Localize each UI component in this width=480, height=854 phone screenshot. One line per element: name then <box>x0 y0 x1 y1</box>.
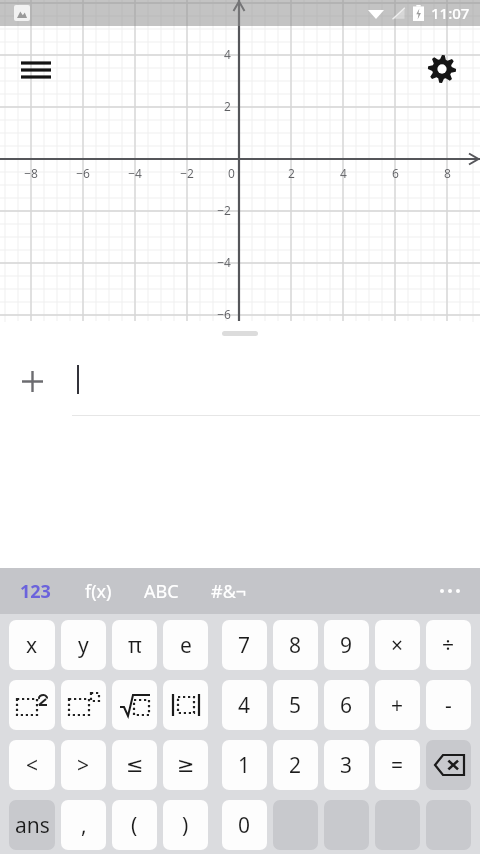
staticText: 11:07 <box>431 3 470 23</box>
button[interactable]: ≤ <box>112 740 157 790</box>
button[interactable]: y <box>61 620 106 670</box>
staticText: −2 <box>217 202 231 218</box>
button[interactable]: 123 <box>16 573 55 610</box>
button[interactable]: 4 <box>222 680 267 730</box>
staticText: 8 <box>444 165 451 181</box>
staticText: x <box>26 631 38 660</box>
button[interactable]: 8 <box>273 620 318 670</box>
staticText: ABC <box>144 579 179 604</box>
staticText: × <box>391 631 404 660</box>
button[interactable]: e <box>163 620 208 670</box>
button[interactable]: More <box>428 569 472 613</box>
button[interactable]: ) <box>163 800 208 850</box>
button[interactable]: - <box>426 680 471 730</box>
staticText: 4 <box>340 165 347 181</box>
button[interactable]: #&¬ <box>207 573 251 610</box>
staticText: −8 <box>24 165 38 181</box>
button[interactable] <box>112 680 157 730</box>
button[interactable]: ÷ <box>426 620 471 670</box>
staticText: 6 <box>340 691 353 720</box>
button[interactable]: ABC <box>140 573 183 610</box>
staticText: - <box>445 691 452 720</box>
button[interactable]: f(x) <box>81 573 116 610</box>
button[interactable]: π <box>112 620 157 670</box>
staticText: > <box>77 751 90 780</box>
staticText: ans <box>15 811 50 840</box>
staticText: + <box>391 691 404 720</box>
button[interactable] <box>9 680 55 730</box>
staticText: 4 <box>224 46 231 62</box>
staticText: ≥ <box>177 753 195 777</box>
staticText: f(x) <box>85 579 112 604</box>
staticText: , <box>81 811 87 840</box>
staticText: −2 <box>180 165 194 181</box>
button[interactable] <box>61 680 106 730</box>
button[interactable]: + <box>375 680 420 730</box>
button[interactable]: 0 <box>222 800 267 850</box>
button[interactable]: 5 <box>273 680 318 730</box>
staticText: −4 <box>217 254 231 270</box>
staticText: 3 <box>340 751 353 780</box>
staticText: ) <box>182 811 189 840</box>
button[interactable]: x <box>9 620 55 670</box>
staticText: −4 <box>128 165 142 181</box>
staticText: −6 <box>76 165 90 181</box>
staticText: −6 <box>217 306 231 322</box>
staticText: 8 <box>289 631 302 660</box>
button[interactable]: > <box>61 740 106 790</box>
staticText: 7 <box>238 631 251 660</box>
button[interactable]: ≥ <box>163 740 208 790</box>
staticText: π <box>128 631 142 660</box>
staticText: 1 <box>238 751 251 780</box>
button[interactable]: 1 <box>222 740 267 790</box>
staticText: 6 <box>392 165 399 181</box>
button[interactable]: Menu <box>14 48 58 92</box>
button[interactable]: 7 <box>222 620 267 670</box>
button[interactable]: 9 <box>324 620 369 670</box>
button[interactable]: < <box>9 740 55 790</box>
staticText: 123 <box>20 579 51 604</box>
staticText: 2 <box>224 98 231 114</box>
staticText: y <box>78 631 89 660</box>
button[interactable]: ans <box>9 800 55 850</box>
button[interactable]: ( <box>112 800 157 850</box>
staticText: = <box>391 751 404 780</box>
button[interactable] <box>163 680 208 730</box>
button[interactable] <box>0 347 480 415</box>
button[interactable]: 6 <box>324 680 369 730</box>
staticText: 2 <box>288 165 295 181</box>
button[interactable]: 2 <box>273 740 318 790</box>
button[interactable]: = <box>375 740 420 790</box>
staticText: ≤ <box>126 753 144 777</box>
staticText: 2 <box>289 751 302 780</box>
staticText: 0 <box>228 165 235 181</box>
staticText: 4 <box>238 691 251 720</box>
button[interactable]: 3 <box>324 740 369 790</box>
staticText: ( <box>131 811 138 840</box>
button[interactable]: × <box>375 620 420 670</box>
button[interactable]: Backspace <box>426 740 471 790</box>
staticText: #&¬ <box>211 579 247 604</box>
staticText: < <box>26 751 39 780</box>
staticText: ÷ <box>442 631 455 660</box>
staticText: 9 <box>340 631 353 660</box>
button[interactable]: Settings <box>420 47 464 91</box>
staticText: e <box>180 631 192 660</box>
button[interactable]: , <box>61 800 106 850</box>
staticText: 0 <box>238 811 251 840</box>
staticText: 5 <box>289 691 302 720</box>
